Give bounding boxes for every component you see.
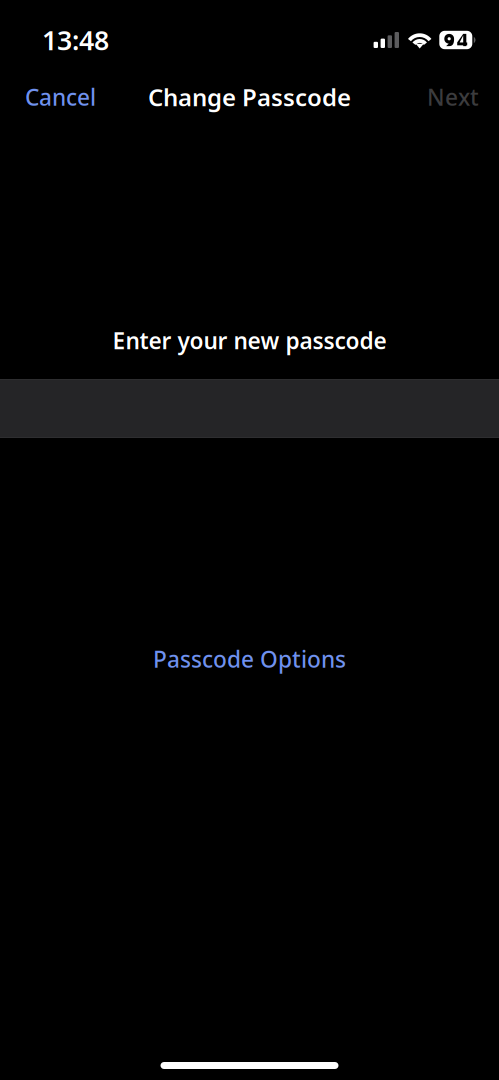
staticText: Enter your new passcode bbox=[112, 325, 386, 355]
button[interactable]: Next bbox=[416, 72, 490, 122]
staticText: Passcode Options bbox=[153, 644, 346, 674]
button[interactable]: Passcode Options bbox=[131, 641, 368, 677]
staticText: Change Passcode bbox=[148, 81, 351, 113]
staticText: Next bbox=[427, 82, 479, 112]
button[interactable]: Cancel bbox=[14, 72, 107, 122]
staticText: Cancel bbox=[25, 82, 96, 112]
